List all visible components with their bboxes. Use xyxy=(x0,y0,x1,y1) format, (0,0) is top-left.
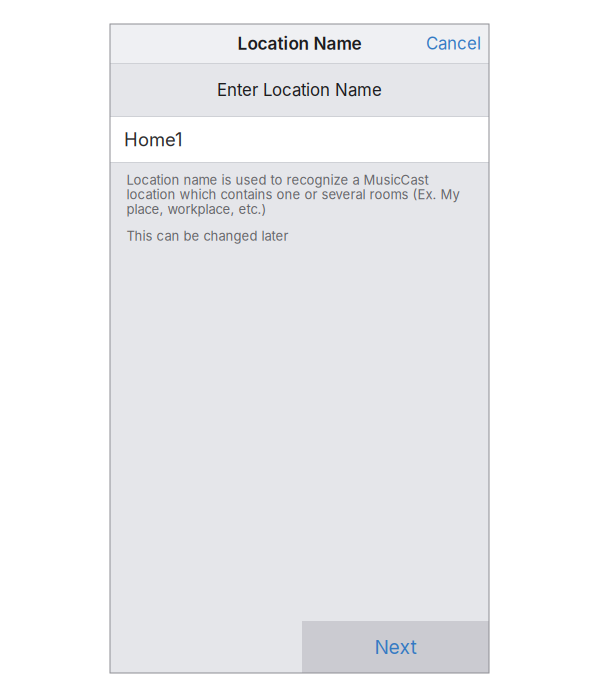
staticText: Next xyxy=(374,635,416,659)
staticText: This can be changed later xyxy=(126,228,288,244)
button[interactable]: Next xyxy=(302,621,489,673)
staticText: Location Name xyxy=(237,33,361,54)
button[interactable]: Cancel xyxy=(426,22,489,65)
staticText: Location name is used to recognize a Mus… xyxy=(126,172,459,217)
staticText: Cancel xyxy=(426,33,481,54)
staticText: Home1 xyxy=(124,128,182,151)
staticText: Enter Location Name xyxy=(217,80,382,100)
button[interactable]: Home1 xyxy=(110,117,489,162)
